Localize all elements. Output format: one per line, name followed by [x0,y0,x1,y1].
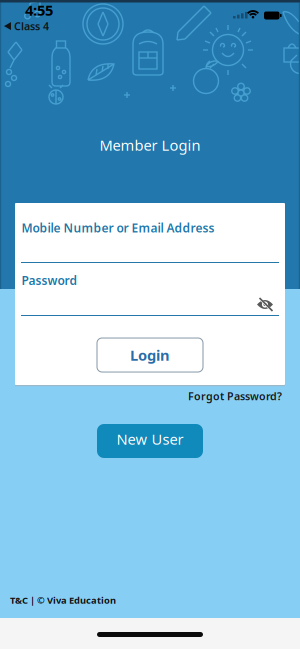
staticText: New User [116,429,183,449]
staticText: Member Login [99,135,200,155]
staticText: Class 4 [14,19,49,33]
staticText: Login [130,345,170,365]
button[interactable]: Login [97,338,203,372]
staticText: 4:55 [25,0,53,20]
button[interactable]: Forgot Password? [188,389,282,403]
staticText: Password [21,272,77,288]
staticText: T&C | © Viva Education [10,594,116,606]
staticText: Forgot Password? [188,389,282,403]
button[interactable]: New User [97,424,203,458]
button[interactable]: Back to Class 4 [4,19,49,33]
button[interactable]: Show password [252,296,278,313]
staticText: Mobile Number or Email Address [21,220,214,236]
